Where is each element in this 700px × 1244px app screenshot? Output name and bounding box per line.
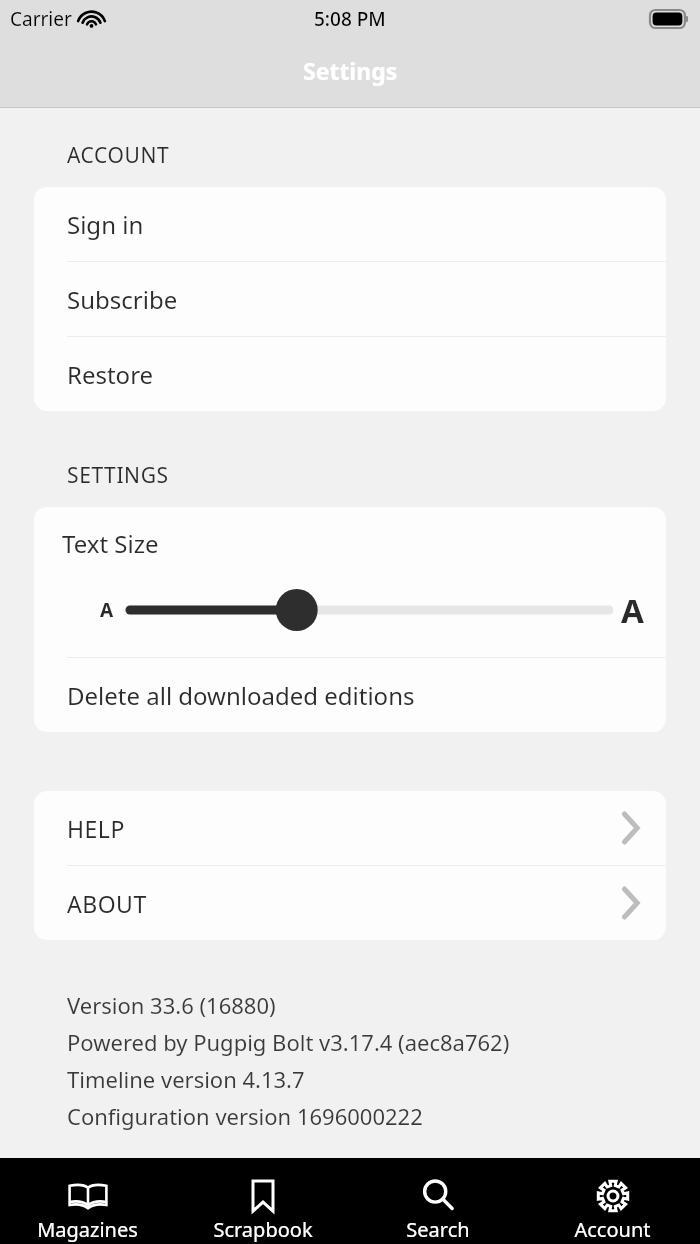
staticText: Powered by Pugpig Bolt v3.17.4 (aec8a762… xyxy=(67,1027,510,1057)
staticText: 5:08 PM xyxy=(314,6,386,32)
button[interactable]: Scrapbook xyxy=(175,1158,350,1244)
staticText: Delete all downloaded editions xyxy=(67,679,415,712)
button[interactable]: HELP xyxy=(34,791,666,865)
staticText: Account xyxy=(574,1216,651,1243)
staticText: ACCOUNT xyxy=(67,141,170,170)
staticText: HELP xyxy=(67,813,622,844)
staticText: Scrapbook xyxy=(213,1216,313,1243)
staticText: Search xyxy=(406,1216,470,1243)
staticText: Subscribe xyxy=(67,283,178,316)
staticText: Restore xyxy=(67,358,154,391)
button[interactable]: Magazines xyxy=(0,1158,175,1244)
staticText: Magazines xyxy=(37,1216,138,1243)
staticText: Settings xyxy=(303,55,398,86)
staticText: Version 33.6 (16880) xyxy=(67,990,276,1020)
staticText: Configuration version 1696000222 xyxy=(67,1101,423,1131)
button[interactable]: Delete all downloaded editions xyxy=(34,658,666,732)
button[interactable]: Subscribe xyxy=(34,262,666,336)
button[interactable]: Sign in xyxy=(34,187,666,261)
staticText: Carrier xyxy=(10,6,72,32)
staticText: Text Size xyxy=(62,527,159,560)
button[interactable]: Search xyxy=(350,1158,525,1244)
staticText: SETTINGS xyxy=(67,461,169,490)
staticText: ABOUT xyxy=(67,888,622,919)
button[interactable]: ABOUT xyxy=(34,866,666,940)
staticText: A xyxy=(100,597,114,623)
staticText: Timeline version 4.13.7 xyxy=(67,1064,305,1094)
button[interactable]: Restore xyxy=(34,337,666,411)
staticText: A xyxy=(621,588,644,633)
staticText: Sign in xyxy=(67,208,144,241)
button[interactable]: Account xyxy=(525,1158,700,1244)
button[interactable]: A xyxy=(34,581,666,639)
